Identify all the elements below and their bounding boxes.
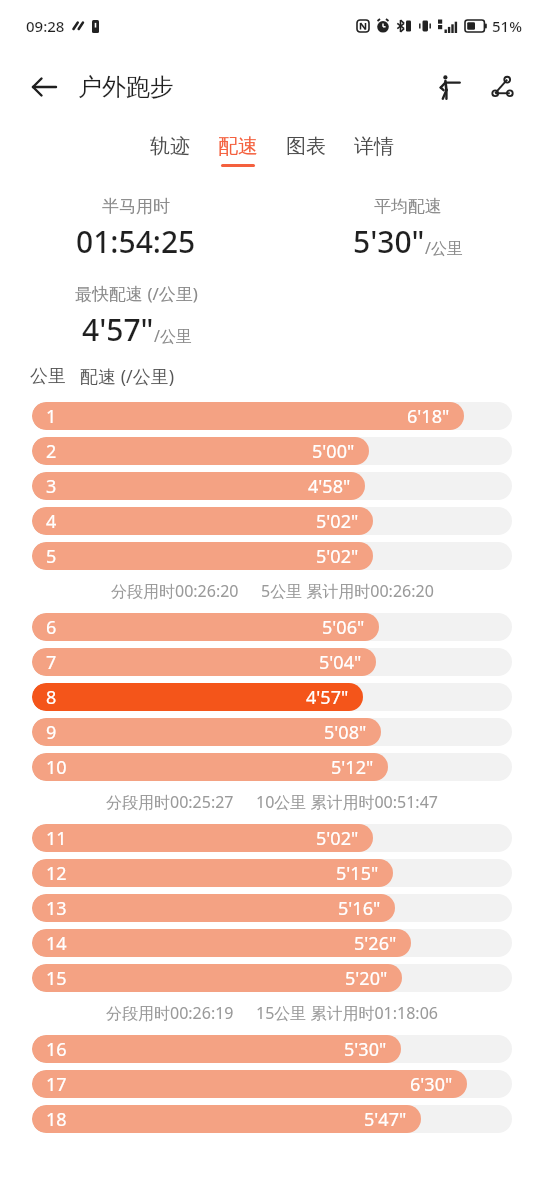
staticText: 5'00" <box>312 439 355 464</box>
staticText: 半马用时 <box>102 196 170 217</box>
staticText: 4 <box>46 509 57 534</box>
staticText: 分段用时00:26:19 <box>106 1002 234 1024</box>
staticText: 5公里 累计用时00:26:20 <box>261 580 434 602</box>
staticText: 5'47" <box>364 1107 407 1132</box>
staticText: 详情 <box>354 134 394 159</box>
staticText: 13 <box>46 896 67 921</box>
staticText: 9 <box>46 720 57 745</box>
staticText: 17 <box>46 1072 67 1097</box>
staticText: 5'06" <box>322 615 365 640</box>
button[interactable]: 配速 <box>204 130 272 171</box>
button[interactable]: 8 <box>0 679 544 714</box>
staticText: 分段用时00:26:20 <box>111 580 239 602</box>
staticText: 5'02" <box>316 509 359 534</box>
staticText: 01:54:25 <box>76 221 196 262</box>
button[interactable]: 轨迹 <box>136 130 204 171</box>
button[interactable]: 12 <box>0 855 544 890</box>
staticText: 4'57" <box>306 685 349 710</box>
button[interactable]: 17 <box>0 1066 544 1101</box>
staticText: 公里 <box>30 365 66 388</box>
staticText: 14 <box>46 931 67 956</box>
button[interactable]: Back <box>22 65 66 109</box>
staticText: 2 <box>46 439 57 464</box>
button[interactable]: 3 <box>0 468 544 503</box>
staticText: 6 <box>46 615 57 640</box>
staticText: 09:28 <box>26 16 65 36</box>
button[interactable]: 9 <box>0 714 544 749</box>
staticText: 平均配速 <box>374 196 442 217</box>
staticText: 5'20" <box>345 966 388 991</box>
staticText: 6'18" <box>407 404 450 429</box>
staticText: 7 <box>46 650 57 675</box>
button[interactable]: 16 <box>0 1031 544 1066</box>
staticText: 最快配速 (/公里) <box>75 282 198 305</box>
staticText: 1 <box>46 404 57 429</box>
button[interactable]: 5 <box>0 538 544 573</box>
staticText: 11 <box>46 826 67 851</box>
staticText: 5 <box>46 544 57 569</box>
staticText: 18 <box>46 1107 67 1132</box>
staticText: 分段用时00:25:27 <box>106 791 234 813</box>
button[interactable]: 2 <box>0 433 544 468</box>
staticText: 5'04" <box>319 650 362 675</box>
staticText: 轨迹 <box>150 134 190 159</box>
staticText: 4'58" <box>308 474 351 499</box>
staticText: 4'57" <box>82 309 154 350</box>
staticText: 5'08" <box>324 720 367 745</box>
staticText: 5'30" <box>353 221 425 262</box>
button[interactable]: Posture <box>426 65 470 109</box>
staticText: 10 <box>46 755 67 780</box>
button[interactable]: 6 <box>0 609 544 644</box>
staticText: 配速 <box>218 134 258 159</box>
staticText: 12 <box>46 861 67 886</box>
staticText: 5'12" <box>331 755 374 780</box>
staticText: 6'30" <box>410 1072 453 1097</box>
button[interactable]: 详情 <box>340 130 408 171</box>
staticText: 16 <box>46 1037 67 1062</box>
button[interactable]: 14 <box>0 925 544 960</box>
button[interactable]: 13 <box>0 890 544 925</box>
button[interactable]: 18 <box>0 1101 544 1136</box>
button[interactable]: 图表 <box>272 130 340 171</box>
staticText: 15 <box>46 966 67 991</box>
staticText: /公里 <box>425 237 463 259</box>
staticText: 5'02" <box>316 826 359 851</box>
staticText: 8 <box>46 685 57 710</box>
button[interactable]: 4 <box>0 503 544 538</box>
staticText: 5'16" <box>338 896 381 921</box>
button[interactable]: 1 <box>0 398 544 433</box>
button[interactable]: Share <box>480 65 524 109</box>
staticText: 15公里 累计用时01:18:06 <box>256 1002 438 1024</box>
button[interactable]: 7 <box>0 644 544 679</box>
staticText: 5'15" <box>336 861 379 886</box>
button[interactable]: 15 <box>0 960 544 995</box>
staticText: 图表 <box>286 134 326 159</box>
staticText: 51% <box>492 16 522 36</box>
staticText: 10公里 累计用时00:51:47 <box>256 791 438 813</box>
staticText: 5'02" <box>316 544 359 569</box>
staticText: 5'26" <box>354 931 397 956</box>
button[interactable]: 11 <box>0 820 544 855</box>
staticText: 3 <box>46 474 57 499</box>
staticText: 配速 (/公里) <box>80 364 175 389</box>
staticText: 5'30" <box>344 1037 387 1062</box>
staticText: /公里 <box>154 325 192 347</box>
staticText: 户外跑步 <box>78 72 174 102</box>
button[interactable]: 10 <box>0 749 544 784</box>
